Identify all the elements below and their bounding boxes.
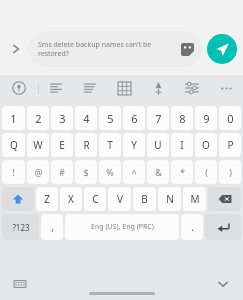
button[interactable]: 6	[123, 106, 145, 130]
staticText: T	[107, 138, 113, 152]
staticText: 7	[155, 111, 162, 126]
button[interactable]: X	[60, 187, 82, 211]
staticText: Z	[44, 192, 50, 206]
staticText: 6	[131, 111, 138, 126]
staticText: M	[190, 192, 200, 206]
button[interactable]: 2	[27, 106, 49, 130]
staticText: I	[180, 138, 184, 152]
button[interactable]: 1	[2, 106, 25, 130]
button[interactable]: P	[219, 133, 241, 157]
staticText: Q	[10, 138, 18, 152]
staticText: U	[154, 138, 162, 152]
button[interactable]: *	[171, 160, 193, 184]
button[interactable]: R	[75, 133, 97, 157]
button[interactable]: 3	[51, 106, 73, 130]
staticText: .	[191, 220, 194, 234]
staticText: Eng (US), Eng (PRC)	[91, 222, 154, 232]
button[interactable]: Sms delete backup names can't be restore…	[28, 31, 202, 67]
staticText: Sms delete backup names can't be restore…	[38, 40, 176, 58]
button[interactable]: Stickers	[176, 38, 198, 60]
button[interactable]: Theme	[141, 75, 175, 101]
button[interactable]: $	[75, 160, 97, 184]
button[interactable]: 4	[75, 106, 97, 130]
staticText: 2	[35, 111, 42, 126]
button[interactable]: O	[195, 133, 217, 157]
staticText: ?123	[12, 222, 30, 233]
button[interactable]: E	[51, 133, 73, 157]
button[interactable]: 7	[147, 106, 169, 130]
staticText: 1	[10, 111, 17, 126]
button[interactable]: #	[51, 160, 73, 184]
button[interactable]: Voice input	[0, 75, 38, 101]
button[interactable]: (	[195, 160, 217, 184]
staticText: R	[83, 138, 90, 152]
staticText: X	[68, 192, 74, 206]
button[interactable]: Y	[123, 133, 145, 157]
staticText: B	[141, 192, 148, 206]
staticText: C	[92, 192, 99, 206]
button[interactable]: Eng (US), Eng (PRC)	[65, 214, 179, 240]
button[interactable]: ^	[123, 160, 145, 184]
button[interactable]: I	[171, 133, 193, 157]
staticText: (	[205, 166, 208, 178]
button[interactable]: V	[108, 187, 131, 211]
staticText: N	[166, 192, 174, 206]
button[interactable]: 0	[219, 106, 241, 130]
staticText: ^	[131, 166, 137, 178]
button[interactable]: Hide keyboard	[213, 274, 233, 294]
button[interactable]: W	[27, 133, 49, 157]
button[interactable]: !	[2, 160, 25, 184]
button[interactable]: Backspace	[208, 187, 241, 211]
button[interactable]: Settings	[175, 75, 209, 101]
staticText: !	[12, 166, 15, 178]
staticText: )	[229, 166, 232, 178]
staticText: 8	[179, 111, 186, 126]
staticText: O	[202, 138, 210, 152]
staticText: $	[83, 166, 89, 178]
staticText: Y	[131, 138, 137, 152]
button[interactable]: M	[183, 187, 206, 211]
button[interactable]: Q	[2, 133, 25, 157]
button[interactable]: 9	[195, 106, 217, 130]
button[interactable]: Enter	[205, 214, 241, 240]
button[interactable]: Clipboard	[73, 75, 107, 101]
staticText: 0	[227, 111, 234, 126]
button[interactable]: .	[181, 214, 203, 240]
button[interactable]: %	[99, 160, 121, 184]
button[interactable]: Send	[207, 34, 237, 64]
button[interactable]: @	[27, 160, 49, 184]
button[interactable]: T	[99, 133, 121, 157]
button[interactable]: 5	[99, 106, 121, 130]
staticText: 5	[107, 111, 114, 126]
staticText: E	[59, 138, 65, 152]
button[interactable]: B	[133, 187, 156, 211]
button[interactable]: Shift	[2, 187, 34, 211]
staticText: ,	[51, 220, 54, 234]
staticText: 9	[203, 111, 210, 126]
button[interactable]: Expand	[4, 37, 28, 61]
button[interactable]: Switch keyboard	[10, 274, 30, 294]
button[interactable]: )	[219, 160, 241, 184]
button[interactable]: N	[158, 187, 181, 211]
staticText: P	[227, 138, 234, 152]
staticText: 3	[59, 111, 66, 126]
button[interactable]: 8	[171, 106, 193, 130]
button[interactable]: Translate	[39, 75, 73, 101]
button[interactable]: C	[84, 187, 106, 211]
button[interactable]: ,	[41, 214, 63, 240]
button[interactable]: Z	[36, 187, 58, 211]
staticText: &	[155, 166, 162, 178]
staticText: @	[34, 166, 43, 178]
button[interactable]: More options	[209, 75, 243, 101]
staticText: #	[59, 166, 65, 178]
staticText: *	[180, 166, 185, 178]
staticText: 4	[83, 111, 90, 126]
staticText: %	[106, 166, 114, 178]
button[interactable]: &	[147, 160, 169, 184]
staticText: V	[117, 192, 123, 206]
button[interactable]: ?123	[2, 214, 39, 240]
staticText: W	[33, 138, 43, 152]
button[interactable]: Keyboard modes	[107, 75, 141, 101]
button[interactable]: U	[147, 133, 169, 157]
